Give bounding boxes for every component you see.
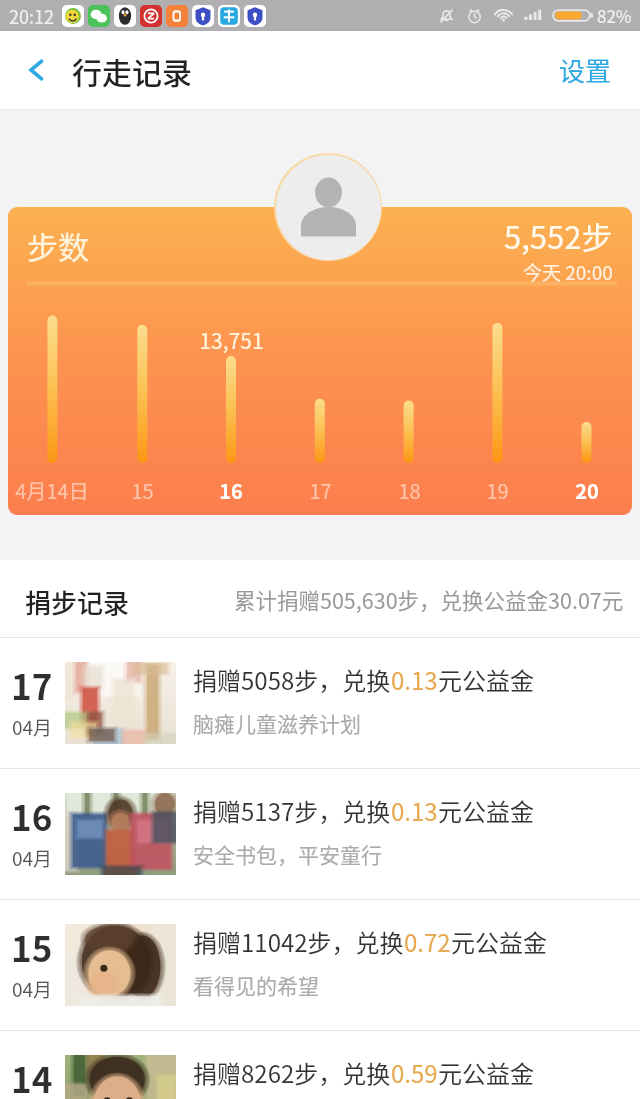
staticText: 捐赠5058步，兑换 <box>193 662 391 697</box>
staticText: 04月 <box>12 844 53 872</box>
staticText: 捐赠11042步，兑换 <box>193 924 404 959</box>
staticText: 元公益金 <box>451 924 547 959</box>
staticText: 行走记录 <box>72 49 192 92</box>
button[interactable]: 16 <box>0 769 640 899</box>
staticText: 捐步记录 <box>25 583 130 621</box>
staticText: 安全书包，平安童行 <box>193 839 382 869</box>
staticText: 4月14日 <box>15 476 89 505</box>
staticText: 17 <box>309 476 332 505</box>
staticText: 0.13 <box>391 793 438 828</box>
staticText: 20:12 <box>9 3 54 29</box>
staticText: 14 <box>11 1052 53 1099</box>
staticText: 看得见的希望 <box>193 970 319 1000</box>
staticText: 脑瘫儿童滋养计划 <box>193 708 361 738</box>
staticText: 0.13 <box>391 662 438 697</box>
button[interactable]: 17 <box>0 638 640 768</box>
staticText: 16 <box>11 790 53 841</box>
staticText: 元公益金 <box>438 793 534 828</box>
staticText: 元公益金 <box>438 662 534 697</box>
staticText: 捐赠8262步，兑换 <box>193 1055 391 1090</box>
staticText: 元公益金 <box>438 1055 534 1090</box>
staticText: 04月 <box>12 713 53 741</box>
staticText: 18 <box>398 476 421 505</box>
button[interactable]: Back <box>0 31 72 109</box>
button[interactable]: 14 <box>0 1031 640 1099</box>
staticText: 19 <box>486 476 509 505</box>
staticText: 累计捐赠505,630步，兑换公益金30.07元 <box>234 584 624 615</box>
staticText: 步数 <box>27 223 89 268</box>
staticText: 15 <box>11 921 53 972</box>
staticText: 04月 <box>12 975 53 1003</box>
staticText: 5,552步 <box>504 213 613 258</box>
staticText: 今天 20:00 <box>523 258 613 286</box>
staticText: 捐赠5137步，兑换 <box>193 793 391 828</box>
staticText: 16 <box>219 476 243 505</box>
button[interactable]: 设置 <box>537 31 640 109</box>
staticText: 设置 <box>559 51 612 89</box>
staticText: 20 <box>575 476 599 505</box>
staticText: 15 <box>131 476 154 505</box>
staticText: 0.59 <box>391 1055 438 1090</box>
staticText: 13,751 <box>199 325 264 355</box>
button[interactable]: 15 <box>0 900 640 1030</box>
staticText: 17 <box>11 659 53 710</box>
staticText: 82% <box>597 3 632 28</box>
staticText: 0.72 <box>404 924 451 959</box>
